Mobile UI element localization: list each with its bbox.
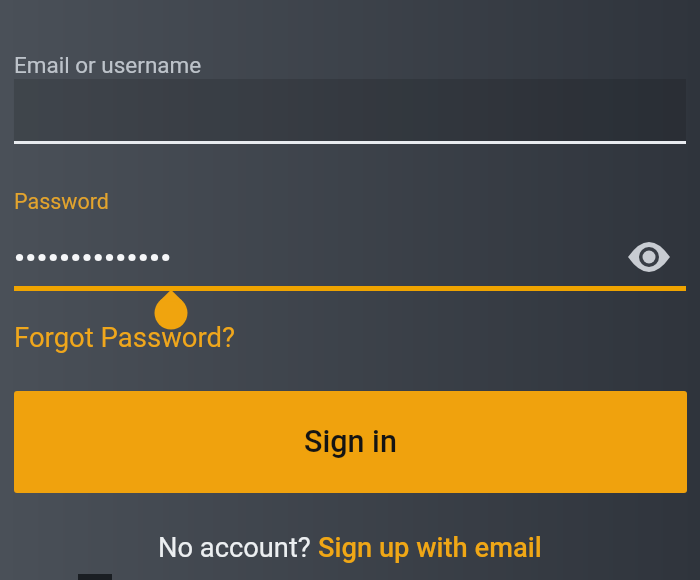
button[interactable] bbox=[14, 79, 686, 141]
button[interactable]: Forgot Password? bbox=[14, 321, 236, 353]
staticText: Password bbox=[14, 189, 109, 214]
staticText: Sign up with email bbox=[318, 532, 542, 564]
staticText: Email or username bbox=[14, 52, 202, 78]
staticText: No account? bbox=[158, 532, 318, 564]
staticText: Sign in bbox=[304, 424, 397, 460]
button[interactable]: No account? bbox=[158, 532, 542, 564]
button[interactable]: Sign in bbox=[14, 391, 687, 493]
